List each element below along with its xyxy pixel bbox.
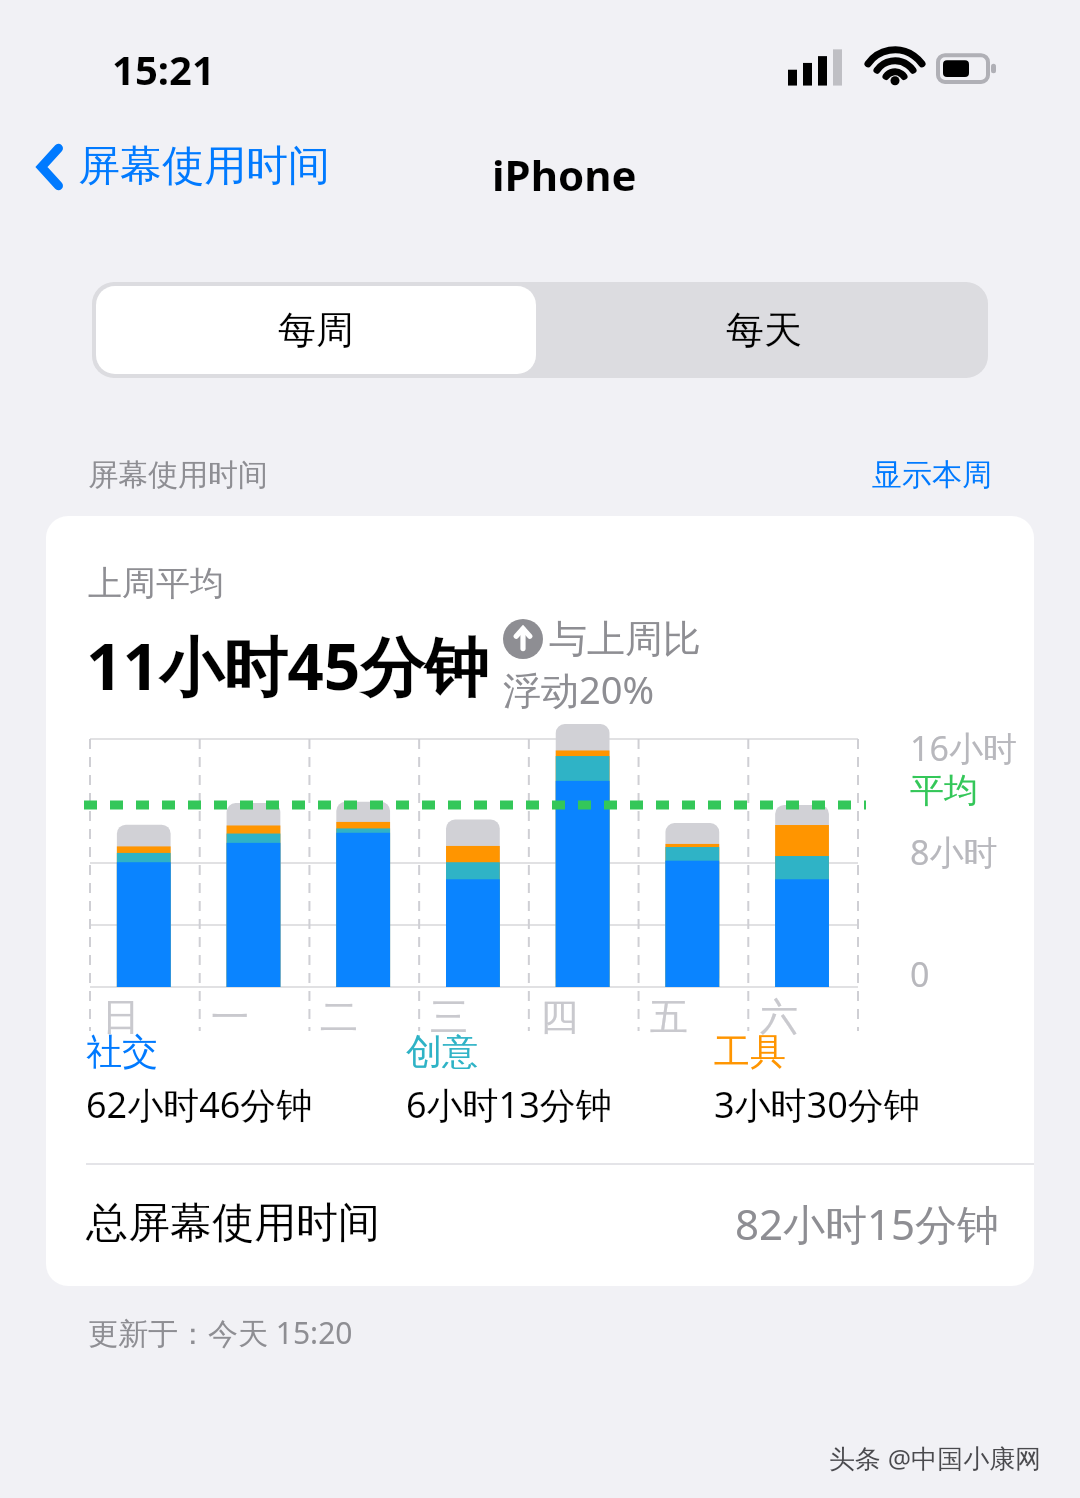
staticText: 日	[102, 993, 140, 1041]
staticText: 一	[211, 993, 249, 1041]
staticText: 创意	[406, 1029, 478, 1074]
staticText: 二	[320, 993, 358, 1041]
staticText: 8小时	[910, 829, 998, 875]
staticText: 平均	[910, 769, 978, 812]
staticText: 与上周比	[549, 615, 701, 663]
staticText: 82小时15分钟	[735, 1195, 1000, 1252]
staticText: 头条 @中国小康网	[829, 1440, 1042, 1476]
staticText: 三	[430, 993, 468, 1041]
staticText: 11小时45分钟	[86, 622, 489, 709]
staticText: 六	[760, 993, 798, 1041]
staticText: 总屏幕使用时间	[86, 1197, 380, 1250]
staticText: 五	[650, 993, 688, 1041]
staticText: 浮动20%	[503, 663, 655, 715]
staticText: 屏幕使用时间	[78, 140, 330, 193]
button[interactable]: 创意	[406, 1029, 714, 1129]
staticText: 6小时13分钟	[406, 1080, 612, 1129]
staticText: 社交	[86, 1029, 158, 1074]
staticText: 15:21	[112, 42, 215, 96]
staticText: 0	[910, 951, 930, 997]
staticText: 上周平均	[88, 562, 224, 605]
button[interactable]: 工具	[714, 1029, 1010, 1129]
button[interactable]: 每天	[540, 282, 988, 378]
staticText: 每周	[278, 306, 354, 354]
staticText: 显示本周	[872, 456, 992, 494]
staticText: 更新于：今天 15:20	[88, 1312, 353, 1353]
staticText: 62小时46分钟	[86, 1080, 313, 1129]
staticText: 每天	[726, 306, 802, 354]
staticText: 16小时	[910, 725, 1017, 771]
staticText: 屏幕使用时间	[88, 456, 268, 494]
staticText: 工具	[714, 1029, 786, 1074]
button[interactable]: 总屏幕使用时间	[46, 1165, 1034, 1286]
staticText: 3小时30分钟	[714, 1080, 920, 1129]
button[interactable]: 社交	[86, 1029, 406, 1129]
staticText: iPhone	[492, 146, 637, 203]
button[interactable]: 每周	[96, 286, 536, 374]
button[interactable]: 屏幕使用时间	[28, 136, 336, 197]
button[interactable]: 显示本周	[872, 456, 992, 494]
staticText: 四	[540, 993, 578, 1041]
